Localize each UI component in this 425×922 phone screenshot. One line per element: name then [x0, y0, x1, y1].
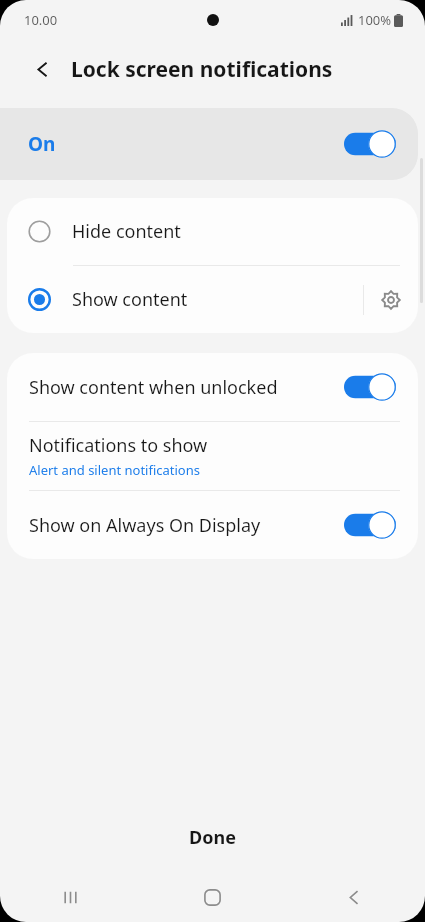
- button[interactable]: Hide content: [7, 198, 418, 265]
- staticText: Notifications to show: [29, 433, 208, 458]
- staticText: Lock screen notifications: [71, 55, 333, 84]
- staticText: Alert and silent notifications: [29, 461, 200, 479]
- other: Toggle: [344, 130, 396, 158]
- button[interactable]: Back: [283, 872, 425, 922]
- button[interactable]: Notifications to show: [7, 422, 418, 490]
- button[interactable]: Home: [141, 872, 283, 922]
- button[interactable]: Back: [26, 52, 60, 86]
- other: Toggle: [344, 373, 396, 401]
- button[interactable]: Done: [0, 814, 425, 860]
- staticText: Show on Always On Display: [29, 513, 261, 538]
- button[interactable]: Show content: [7, 266, 418, 333]
- staticText: 100%: [358, 11, 392, 29]
- staticText: Show content when unlocked: [29, 375, 278, 400]
- button[interactable]: Show content when unlocked: [7, 353, 418, 421]
- button[interactable]: Show on Always On Display: [7, 491, 418, 559]
- staticText: 10.00: [24, 11, 58, 29]
- button[interactable]: Notification settings: [364, 266, 418, 333]
- button[interactable]: On: [0, 108, 418, 180]
- other: Toggle: [344, 511, 396, 539]
- staticText: Hide content: [72, 219, 181, 244]
- staticText: Done: [189, 825, 236, 850]
- staticText: Show content: [72, 287, 188, 312]
- staticText: On: [28, 131, 56, 157]
- button[interactable]: Recents: [0, 872, 141, 922]
